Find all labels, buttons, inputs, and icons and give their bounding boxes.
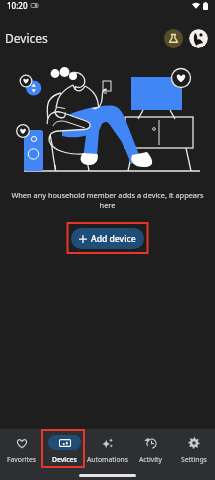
staticText: 10:20 (7, 0, 28, 11)
button[interactable]: Settings (172, 429, 215, 469)
staticText: When any household member adds a device,… (8, 190, 207, 210)
staticText: Settings (181, 455, 207, 464)
button[interactable]: Account (189, 29, 208, 48)
staticText: Add device (91, 233, 136, 245)
staticText: Favorites (7, 455, 37, 464)
button[interactable]: Devices (43, 429, 86, 469)
button[interactable]: Labs (164, 29, 183, 48)
staticText: Activity (139, 455, 162, 464)
staticText: Devices (52, 455, 77, 464)
button[interactable]: Add device (71, 228, 144, 249)
staticText: Devices (5, 30, 48, 46)
staticText: Automations (87, 455, 129, 464)
button[interactable]: Favorites (0, 429, 43, 469)
button[interactable]: Activity (129, 429, 172, 469)
button[interactable]: Automations (86, 429, 129, 469)
